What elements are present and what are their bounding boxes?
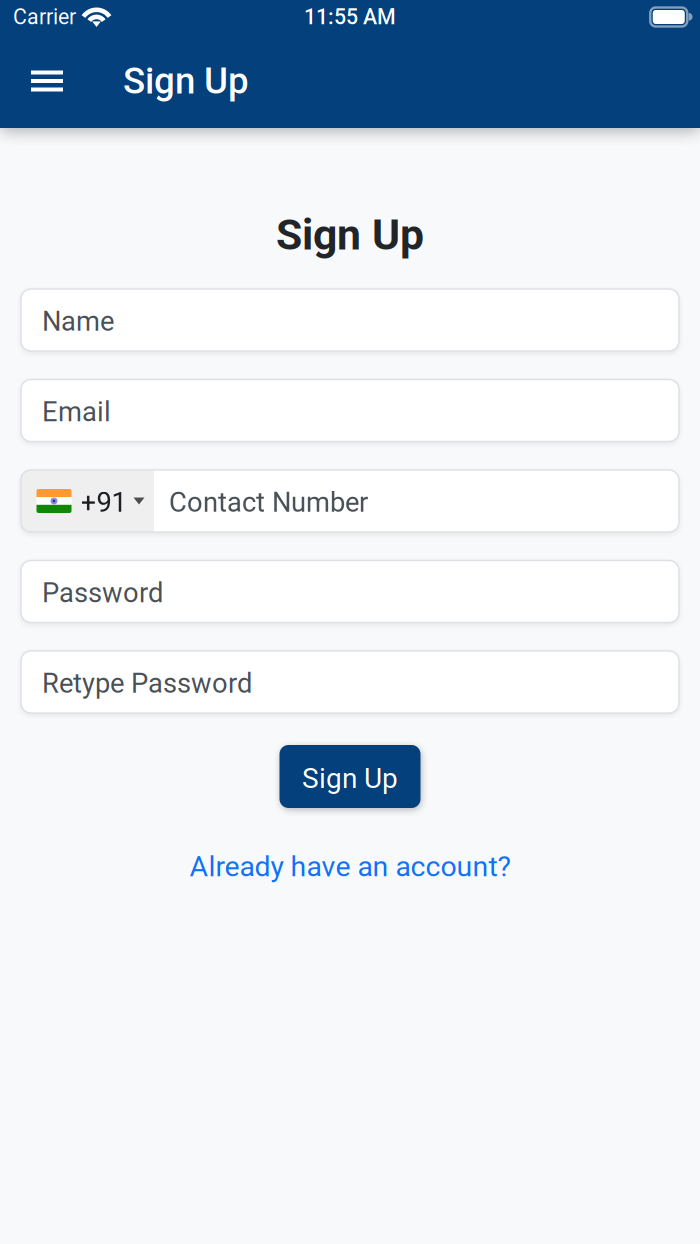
staticText: Contact Number [169,486,368,518]
staticText: Sign Up [302,762,398,795]
staticText: Already have an account? [189,850,510,883]
button[interactable]: Sign Up [279,745,420,808]
staticText: 11:55 AM [304,4,396,29]
staticText: Sign Up [123,59,249,102]
button[interactable]: Password [21,560,679,622]
staticText: +91 [80,486,126,518]
button[interactable]: Retype Password [21,651,679,713]
button[interactable]: Already have an account? [179,842,520,891]
button[interactable]: Email [21,379,679,441]
staticText: Password [42,577,163,609]
staticText: Email [42,396,111,428]
button[interactable]: Menu [16,53,78,109]
staticText: Retype Password [42,667,252,699]
staticText: Carrier [13,4,76,29]
button[interactable]: Name [21,289,679,351]
button[interactable]: +91 [21,470,679,532]
staticText: Sign Up [276,210,424,260]
staticText: Name [42,305,114,337]
